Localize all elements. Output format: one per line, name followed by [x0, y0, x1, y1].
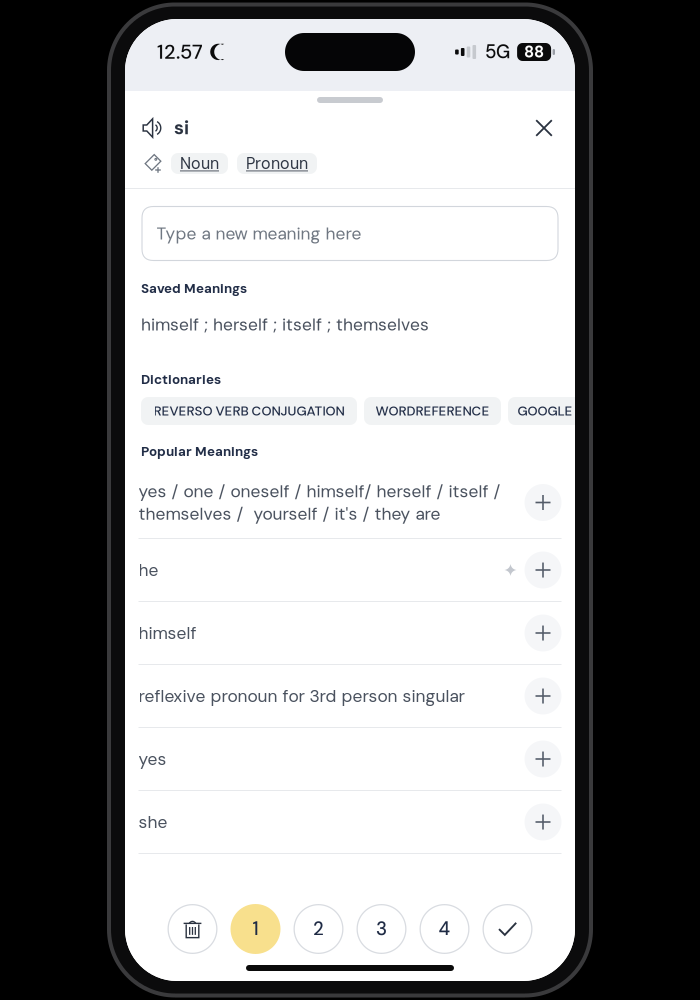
staticText: si [174, 116, 189, 140]
button[interactable]: Delete [167, 904, 217, 954]
button[interactable]: 1 [230, 904, 280, 954]
staticText: reflexive pronoun for 3rd person singula… [138, 685, 464, 707]
button[interactable]: GOOGLE TRANSLATE [508, 397, 658, 425]
staticText: 3 [376, 917, 387, 941]
button[interactable]: Noun [171, 153, 228, 174]
staticText: 12.57 [157, 39, 203, 65]
staticText: Dictionaries [141, 371, 221, 388]
staticText: 2 [313, 917, 324, 941]
staticText: Noun [180, 153, 219, 174]
button[interactable]: yes / one / oneself / himself/ herself /… [122, 467, 577, 539]
staticText: Type a new meaning here [156, 222, 361, 245]
button[interactable]: he [122, 539, 577, 602]
staticText: 88 [524, 42, 544, 62]
staticText: 1 [252, 917, 258, 941]
staticText: WORDREFERENCE [375, 402, 489, 420]
staticText: 5G [485, 40, 510, 64]
button[interactable]: Confirm [482, 904, 532, 954]
button[interactable]: Close [531, 115, 557, 141]
button[interactable]: 2 [293, 904, 343, 954]
button[interactable]: himself [122, 602, 577, 665]
button[interactable]: reflexive pronoun for 3rd person singula… [122, 665, 577, 728]
staticText: she [138, 811, 167, 833]
staticText: yes [138, 748, 166, 770]
button[interactable]: yes [122, 728, 577, 791]
staticText: himself ; herself ; itself ; themselves [141, 313, 429, 336]
button[interactable]: she [122, 791, 577, 854]
button[interactable]: REVERSO VERB CONJUGATION [141, 397, 357, 425]
staticText: yes / one / oneself / himself/ herself /… [138, 480, 500, 525]
staticText: 4 [438, 917, 450, 941]
staticText: Pronoun [246, 153, 308, 174]
button[interactable]: Pronoun [237, 153, 317, 174]
staticText: Popular Meanings [141, 443, 258, 460]
staticText: REVERSO VERB CONJUGATION [153, 402, 344, 420]
staticText: he [138, 559, 158, 581]
staticText: himself [138, 622, 196, 644]
button[interactable]: 4 [419, 904, 469, 954]
button[interactable]: 3 [356, 904, 406, 954]
staticText: Saved Meanings [141, 280, 247, 297]
staticText: GOOGLE TRANSLATE [517, 402, 648, 420]
button[interactable]: WORDREFERENCE [364, 397, 501, 425]
